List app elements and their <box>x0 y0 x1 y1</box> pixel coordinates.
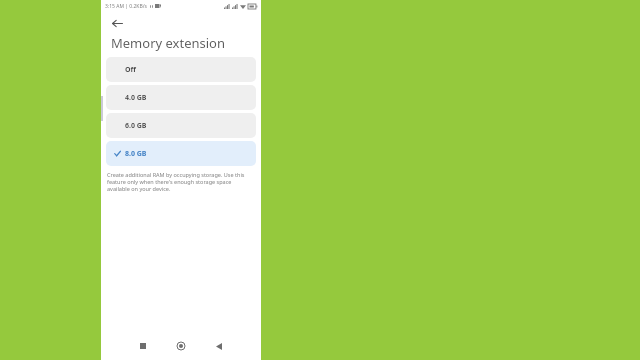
button[interactable]: Back <box>107 13 127 33</box>
staticText: Memory extension <box>111 34 226 52</box>
staticText: Off <box>125 65 136 75</box>
staticText: 3:15 AM | 0.2KB/s <box>105 3 147 10</box>
button[interactable]: 6.0 GB <box>106 113 256 138</box>
button[interactable]: Back <box>211 338 227 354</box>
staticText: 8.0 GB <box>125 149 147 159</box>
button[interactable]: Off <box>106 57 256 82</box>
staticText: Create additional RAM by occupying stora… <box>107 171 255 192</box>
button[interactable]: 4.0 GB <box>106 85 256 110</box>
button[interactable]: Home <box>173 338 189 354</box>
button[interactable]: 8.0 GB <box>106 141 256 166</box>
staticText: 4.0 GB <box>125 93 147 103</box>
staticText: 6.0 GB <box>125 121 147 131</box>
button[interactable]: Recents <box>135 338 151 354</box>
